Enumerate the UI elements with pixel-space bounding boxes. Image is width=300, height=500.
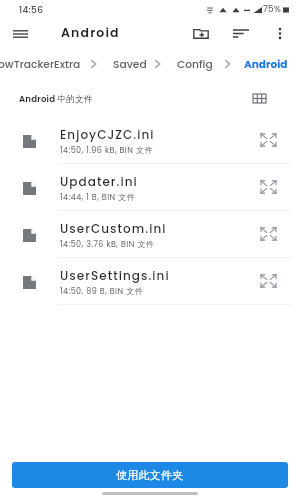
button[interactable]: owTrackerExtra — [0, 57, 81, 72]
staticText: 14:56 — [19, 4, 44, 17]
staticText: UserCustom.ini — [60, 220, 167, 237]
staticText: Android — [61, 24, 120, 41]
button[interactable]: 使用此文件夹 — [12, 462, 288, 488]
button[interactable]: Expand — [253, 266, 283, 296]
staticText: UserSettings.ini — [60, 267, 170, 284]
button[interactable]: New folder — [184, 17, 217, 50]
staticText: 14:44, 1 B, BIN 文件 — [60, 192, 136, 203]
staticText: 14:50, 89 B, BIN 文件 — [60, 286, 144, 297]
staticText: 14:50, 3.76 kB, BIN 文件 — [60, 239, 155, 250]
button[interactable]: UserCustom.ini — [0, 211, 300, 257]
button[interactable]: Expand — [253, 125, 283, 155]
button[interactable]: Saved — [113, 57, 147, 72]
button[interactable]: Expand — [253, 219, 283, 249]
button[interactable]: Expand — [253, 172, 283, 202]
button[interactable]: Updater.ini — [0, 164, 300, 210]
button[interactable]: UserSettings.ini — [0, 258, 300, 304]
button[interactable]: Menu — [4, 17, 37, 50]
button[interactable]: Grid view — [243, 82, 275, 114]
staticText: 75% — [263, 3, 281, 16]
button[interactable]: Sort — [224, 17, 257, 50]
staticText: Updater.ini — [60, 173, 138, 190]
button[interactable]: EnjoyCJZC.ini — [0, 117, 300, 163]
staticText: EnjoyCJZC.ini — [60, 126, 155, 143]
button[interactable]: Config — [177, 57, 213, 72]
button[interactable]: More options — [263, 17, 296, 50]
staticText: Android 中的文件 — [19, 93, 93, 105]
button[interactable]: Android — [244, 57, 288, 72]
staticText: 14:50, 1.96 kB, BIN 文件 — [60, 145, 153, 156]
staticText: 使用此文件夹 — [116, 468, 184, 482]
